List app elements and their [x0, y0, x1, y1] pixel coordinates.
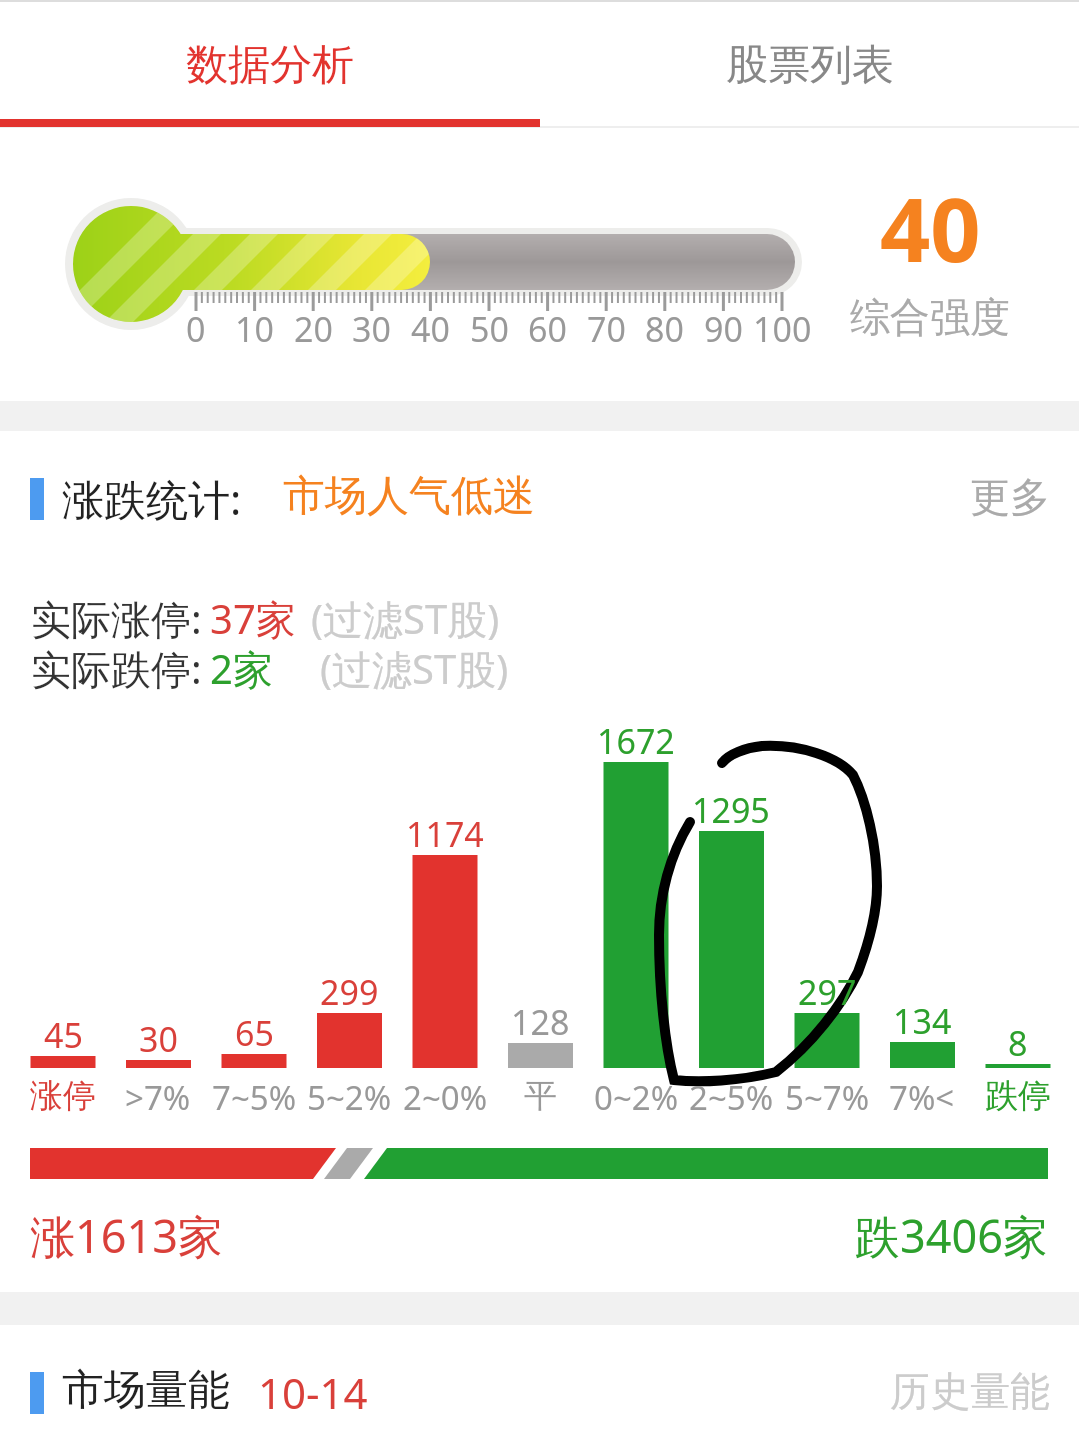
staticText: 10 — [235, 306, 274, 352]
staticText: 涨跌统计: — [62, 470, 242, 527]
staticText: 30 — [139, 1016, 178, 1062]
staticText: 实际跌停: — [31, 641, 202, 696]
staticText: 2~0% — [403, 1075, 488, 1120]
staticText: 70 — [587, 306, 626, 352]
staticText: 0 — [186, 306, 206, 352]
staticText: 50 — [470, 306, 509, 352]
staticText: 299 — [320, 969, 379, 1015]
staticText: 1174 — [406, 811, 484, 857]
staticText: 跌3406家 — [855, 1205, 1048, 1266]
staticText: 股票列表 — [726, 39, 894, 92]
staticText: >7% — [125, 1075, 191, 1120]
staticText: 20 — [294, 306, 333, 352]
staticText: 1295 — [692, 787, 770, 833]
staticText: 市场量能 — [62, 1364, 230, 1417]
staticText: 100 — [753, 306, 812, 352]
staticText: 40 — [411, 306, 450, 352]
staticText: 7~5% — [212, 1075, 297, 1120]
staticText: 涨停 — [30, 1075, 96, 1117]
staticText: 历史量能 — [890, 1366, 1050, 1416]
staticText: 2~5% — [689, 1075, 774, 1120]
staticText: 30 — [352, 306, 391, 352]
staticText: 综合强度 — [850, 292, 1010, 342]
staticText: 297 — [798, 969, 857, 1015]
staticText: 37家 — [210, 591, 296, 646]
staticText: 45 — [44, 1012, 83, 1058]
staticText: 涨1613家 — [30, 1205, 223, 1266]
staticText: (过滤ST股) — [320, 641, 509, 696]
staticText: 65 — [235, 1010, 274, 1056]
button[interactable]: 历史量能 — [850, 1356, 1050, 1426]
staticText: 5~7% — [785, 1075, 870, 1120]
staticText: 8 — [1008, 1020, 1028, 1066]
staticText: 10-14 — [258, 1364, 368, 1421]
staticText: 0~2% — [594, 1075, 679, 1120]
button[interactable]: 更多 — [930, 462, 1050, 532]
staticText: (过滤ST股) — [311, 591, 500, 646]
staticText: 128 — [511, 999, 570, 1045]
staticText: 跌停 — [985, 1075, 1051, 1117]
staticText: 40 — [880, 168, 981, 288]
button[interactable]: 数据分析 — [0, 10, 540, 120]
staticText: 60 — [528, 306, 567, 352]
button[interactable]: 股票列表 — [540, 10, 1079, 120]
staticText: 实际涨停: — [31, 591, 202, 646]
staticText: 市场人气低迷 — [283, 470, 535, 523]
staticText: 80 — [645, 306, 684, 352]
staticText: 数据分析 — [186, 39, 354, 92]
staticText: 90 — [704, 306, 743, 352]
staticText: 5~2% — [307, 1075, 392, 1120]
staticText: 7%< — [889, 1075, 955, 1120]
staticText: 2家 — [210, 641, 273, 696]
staticText: 更多 — [970, 472, 1050, 522]
staticText: 1672 — [597, 718, 675, 764]
staticText: 平 — [524, 1075, 557, 1117]
staticText: 134 — [893, 998, 952, 1044]
